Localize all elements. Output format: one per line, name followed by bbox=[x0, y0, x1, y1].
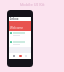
staticText: Mobile UI Kit bbox=[0, 2, 64, 7]
button[interactable] bbox=[10, 32, 31, 37]
staticText: Welcome bbox=[10, 26, 23, 30]
staticText: Inbox bbox=[10, 17, 19, 21]
button[interactable] bbox=[10, 41, 31, 46]
button[interactable]: Search bbox=[19, 55, 22, 57]
button[interactable]: Welcome bbox=[9, 21, 31, 31]
